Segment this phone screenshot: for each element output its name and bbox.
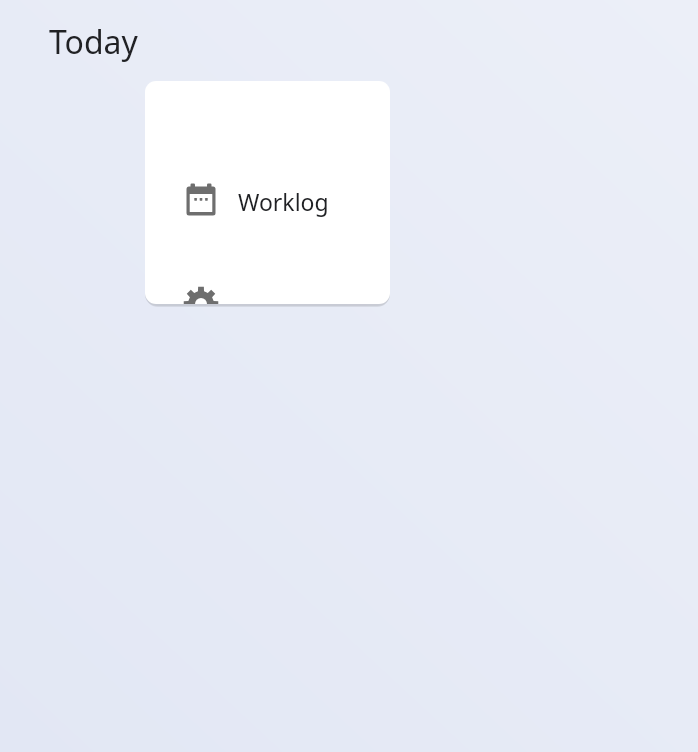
staticText: Today <box>49 20 138 64</box>
staticText: Worklog <box>238 186 329 217</box>
button[interactable]: Worklog <box>145 98 390 304</box>
